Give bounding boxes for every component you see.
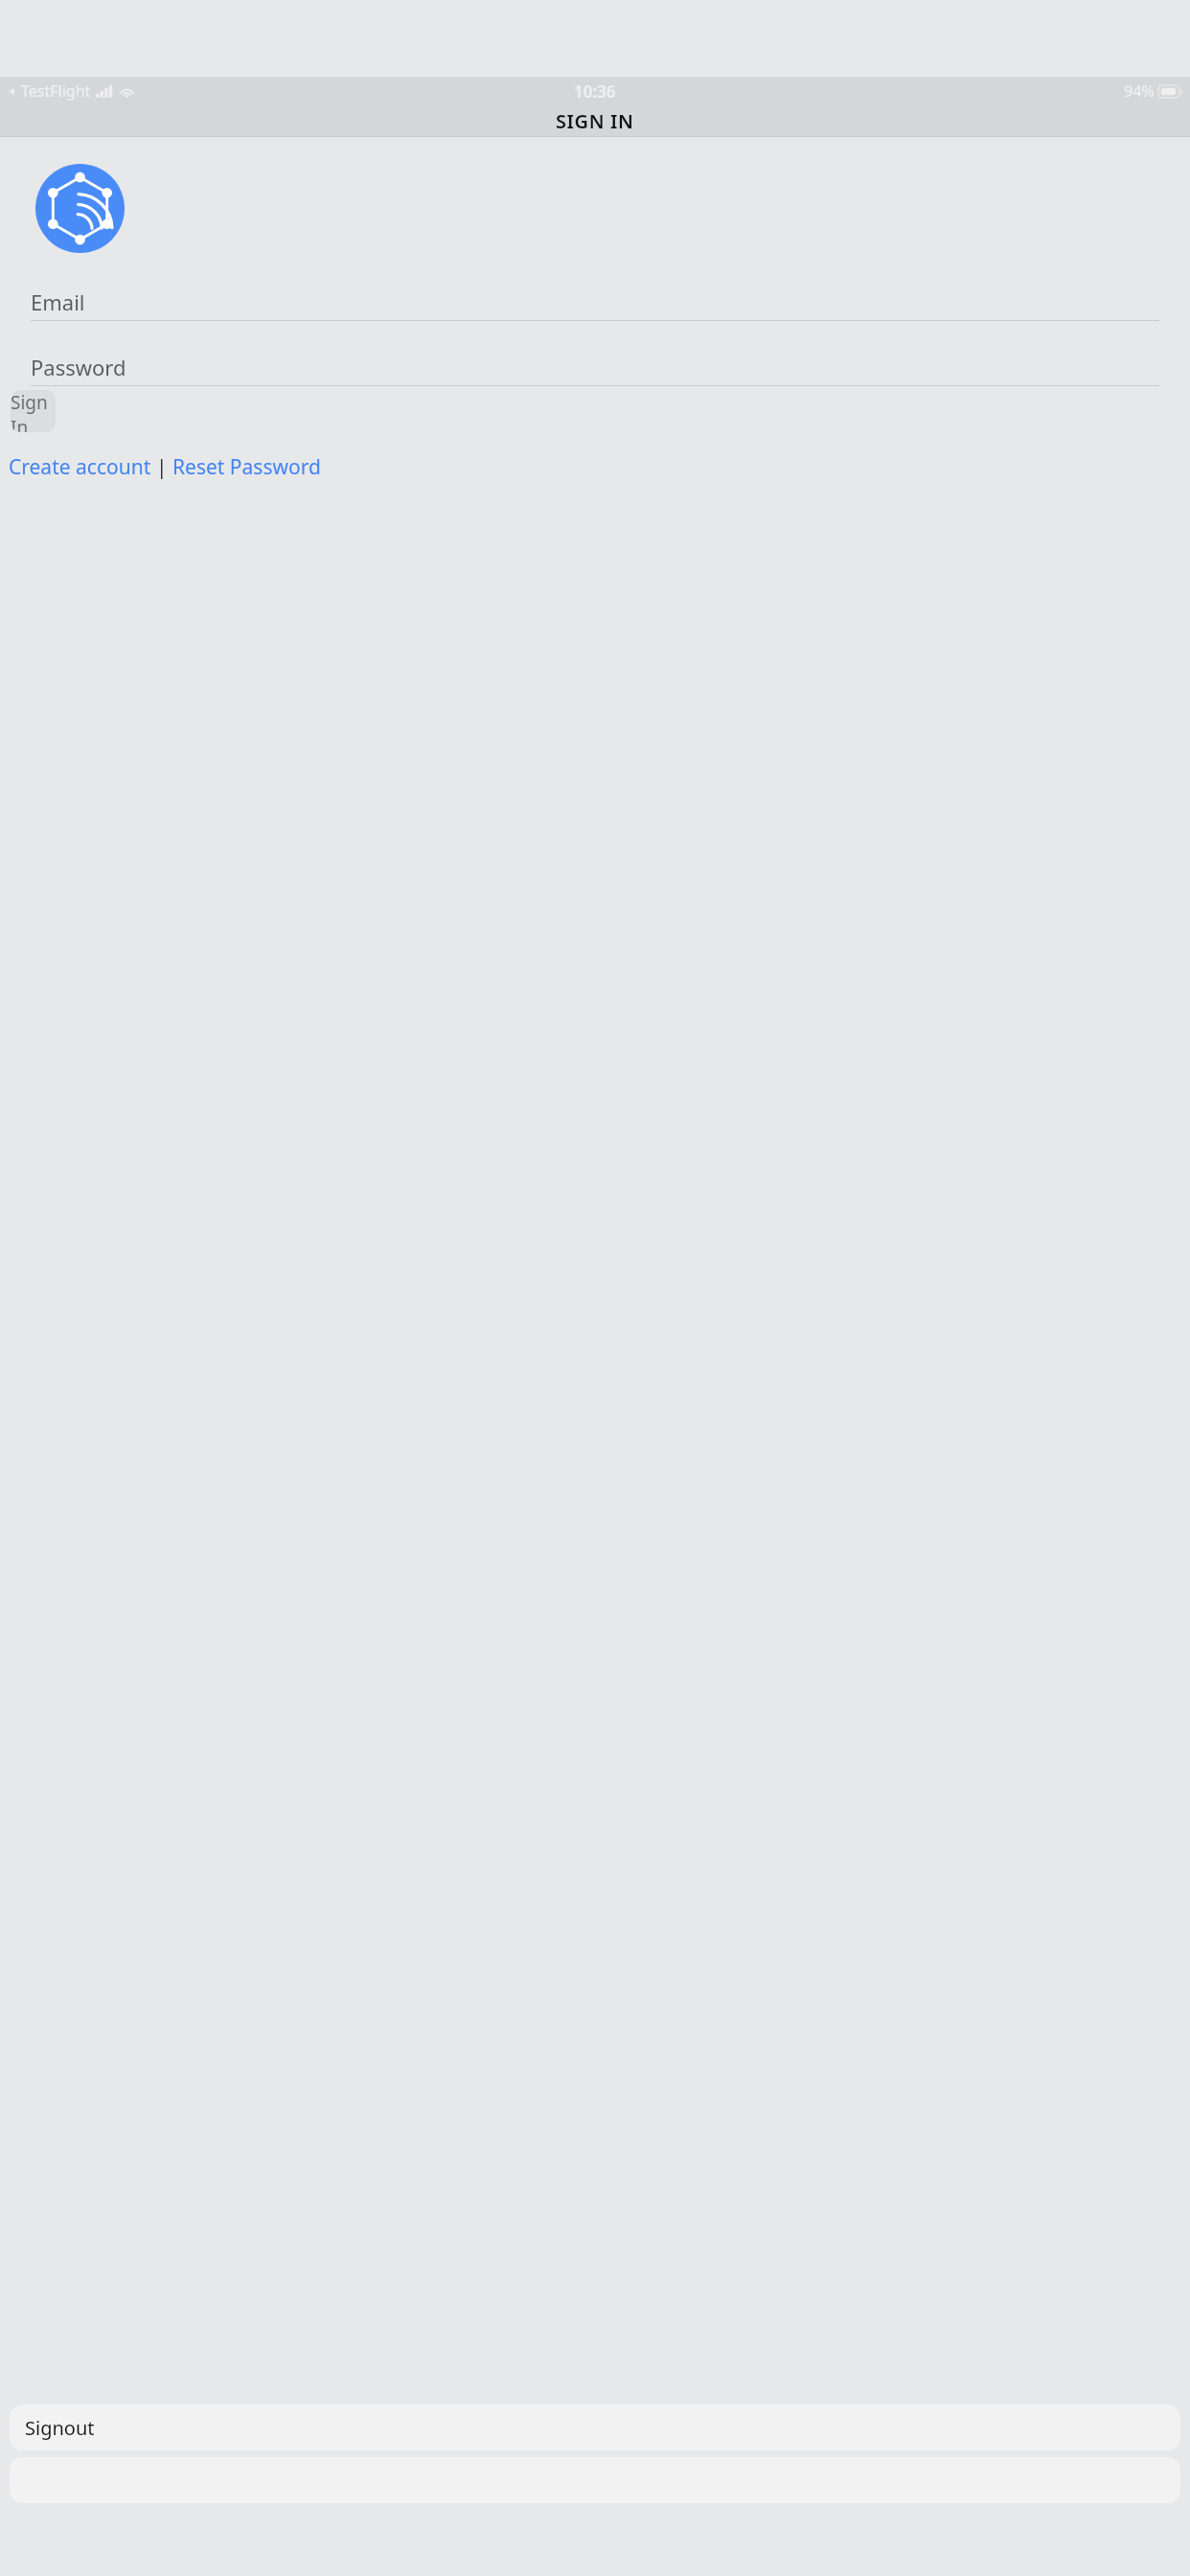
staticText: Email — [31, 287, 85, 316]
button[interactable]: Signout — [10, 2404, 1180, 2450]
staticText: Password — [31, 353, 126, 381]
staticText: Create account — [9, 453, 151, 481]
button[interactable]: Reset Password — [172, 453, 321, 481]
button[interactable]: Password — [31, 349, 1159, 385]
staticText: | — [156, 453, 168, 481]
staticText: TestFlight — [21, 80, 91, 102]
button[interactable]: Email — [31, 284, 1159, 320]
staticText: 94% — [1124, 80, 1155, 102]
button[interactable]: Sign In — [11, 390, 56, 432]
staticText: Reset Password — [172, 453, 321, 481]
staticText: Sign In — [11, 390, 56, 432]
staticText: SIGN IN — [556, 108, 634, 134]
staticText: 10:36 — [574, 80, 616, 103]
other: App logo — [35, 164, 125, 253]
staticText: Signout — [25, 2415, 95, 2441]
button[interactable]: Create account — [9, 453, 151, 481]
